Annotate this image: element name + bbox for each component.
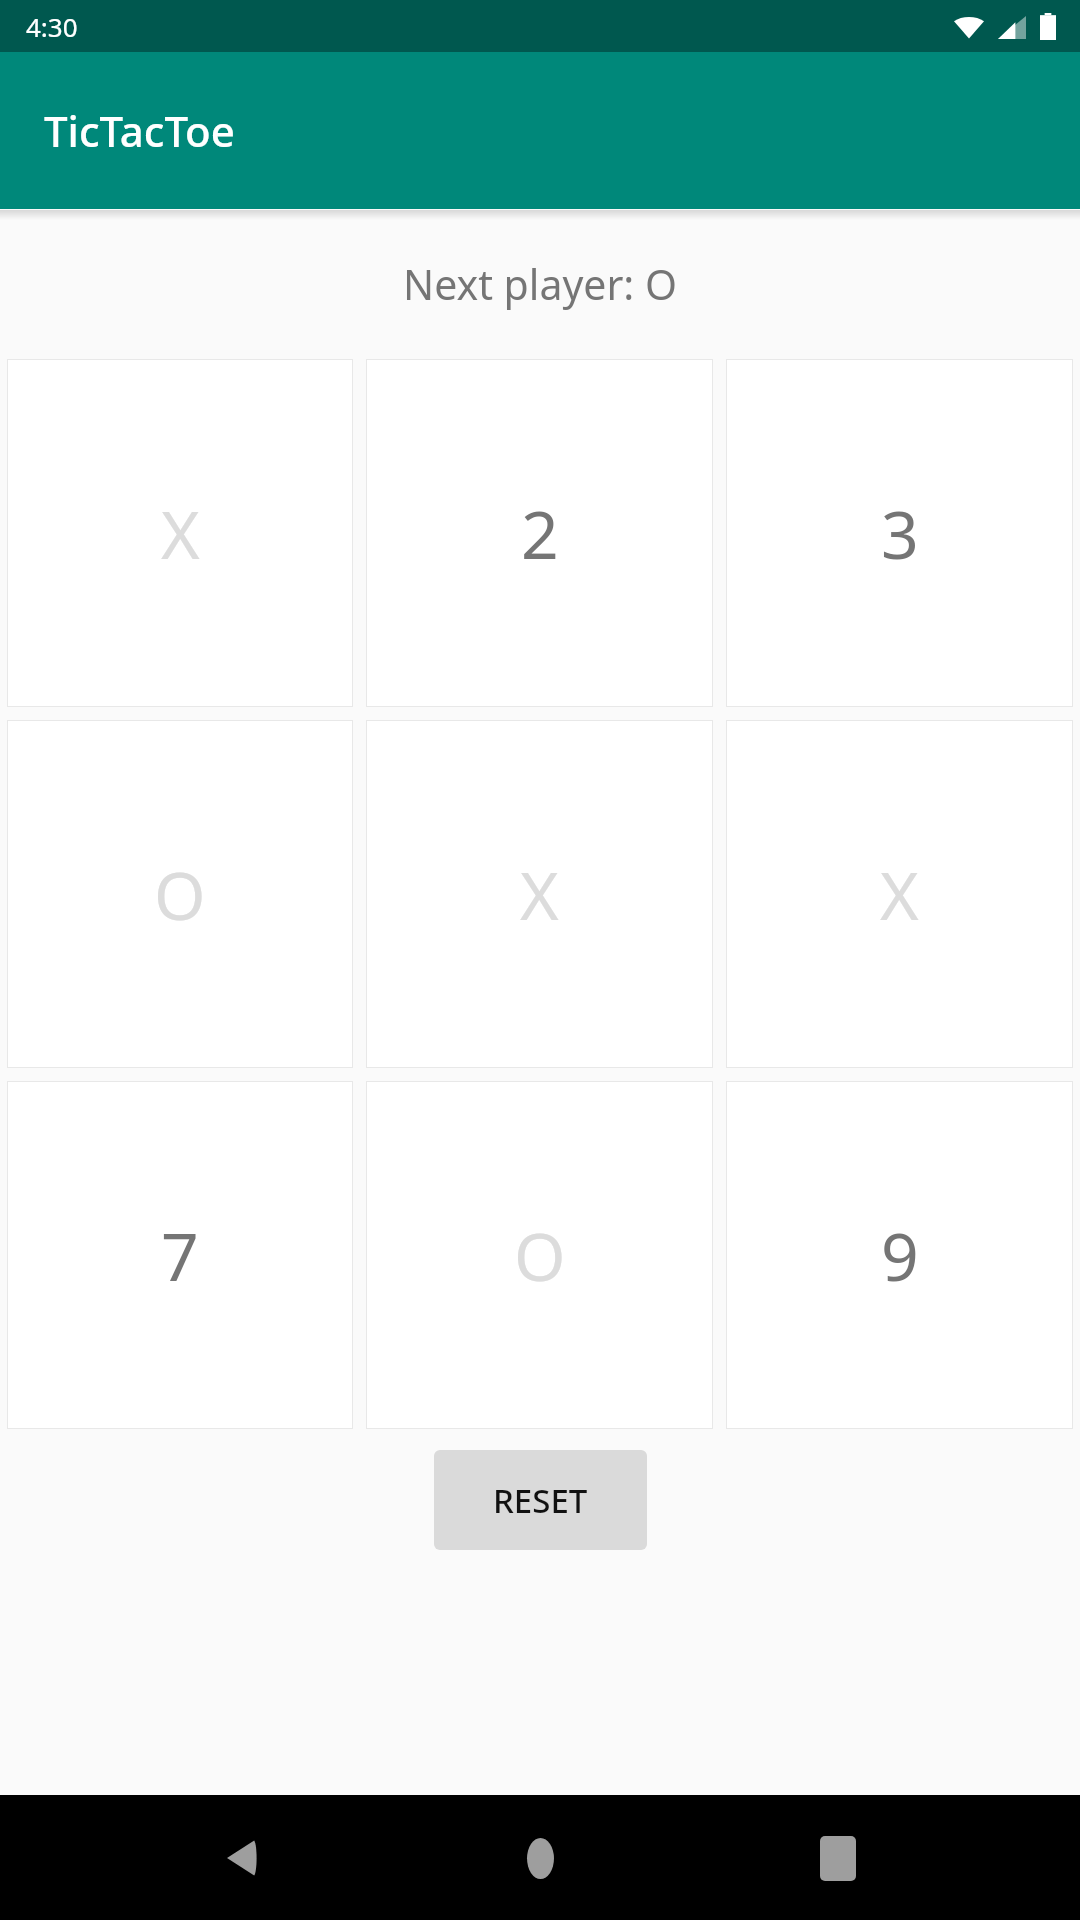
button[interactable]: Recent apps	[783, 1803, 893, 1913]
button[interactable]: 3	[727, 360, 1072, 706]
button[interactable]: Back	[188, 1803, 298, 1913]
staticText: 4:30	[26, 9, 78, 44]
staticText: X	[880, 849, 919, 939]
staticText: O	[154, 849, 206, 939]
staticText: 7	[161, 1210, 199, 1300]
staticText: X	[161, 488, 200, 578]
button[interactable]: RESET	[434, 1450, 647, 1550]
staticText: 3	[881, 488, 919, 578]
staticText: 2	[521, 488, 559, 578]
staticText: O	[514, 1210, 566, 1300]
staticText: TicTacToe	[44, 102, 235, 159]
staticText: RESET	[493, 1478, 588, 1523]
button[interactable]: 2	[367, 360, 712, 706]
button[interactable]: 9	[727, 1082, 1072, 1428]
button[interactable]: Home	[485, 1803, 595, 1913]
button[interactable]: 7	[8, 1082, 352, 1428]
staticText: X	[520, 849, 559, 939]
staticText: 9	[881, 1210, 919, 1300]
staticText: Next player: O	[7, 256, 1073, 312]
